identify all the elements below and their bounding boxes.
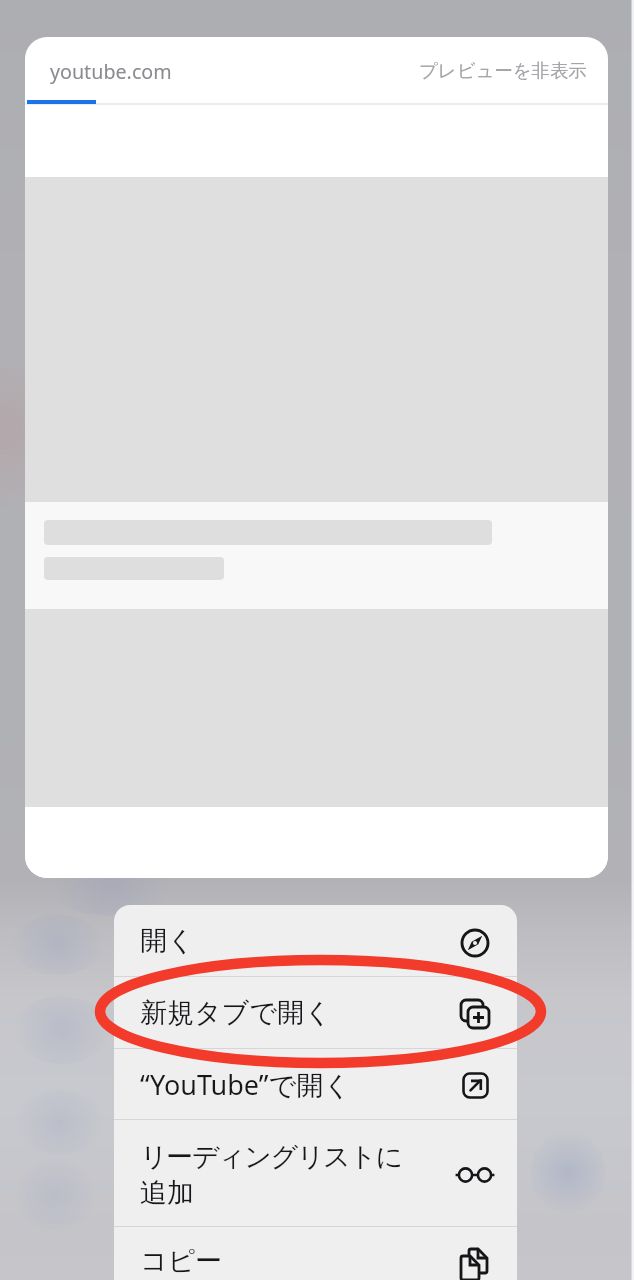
staticText: “YouTube”で開く bbox=[140, 1066, 351, 1103]
other: Copy bbox=[455, 1243, 495, 1280]
other: Open bbox=[455, 923, 495, 963]
staticText: youtube.com bbox=[50, 58, 172, 85]
other: Open in new tab bbox=[455, 995, 495, 1035]
other: Add to reading list bbox=[455, 1155, 495, 1195]
staticText: 開く bbox=[140, 924, 195, 958]
button[interactable]: “YouTube”で開く bbox=[114, 1049, 517, 1119]
other: Open in app bbox=[455, 1065, 495, 1105]
staticText: コピー bbox=[140, 1244, 223, 1278]
staticText: リーディングリストに bbox=[140, 1140, 402, 1174]
staticText: 追加 bbox=[140, 1176, 194, 1210]
button[interactable]: コピー bbox=[114, 1227, 517, 1280]
staticText: 新規タブで開く bbox=[140, 996, 332, 1030]
staticText: プレビューを非表示 bbox=[419, 59, 587, 82]
button[interactable]: 開く bbox=[114, 905, 517, 976]
button[interactable]: 新規タブで開く bbox=[114, 977, 517, 1048]
button[interactable]: リーディングリストに bbox=[114, 1120, 517, 1226]
button[interactable]: youtube.com bbox=[25, 37, 608, 878]
